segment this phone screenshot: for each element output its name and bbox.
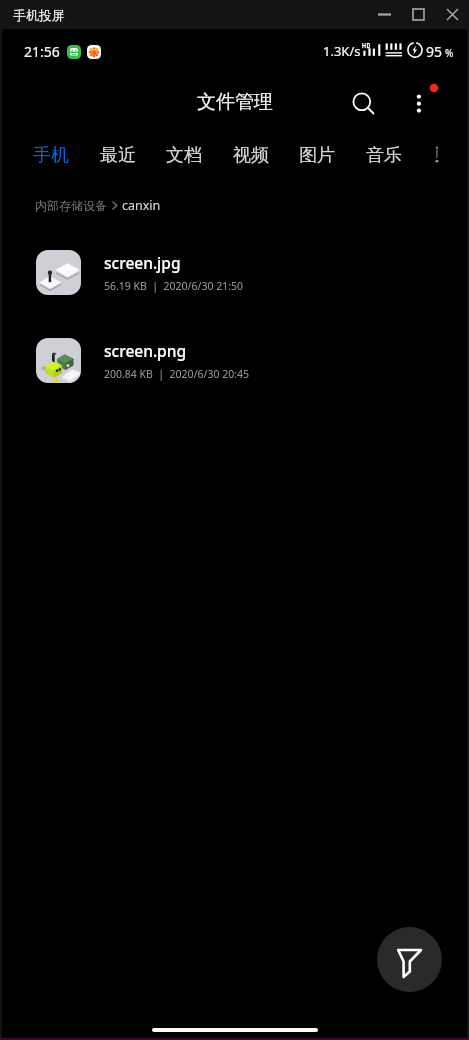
staticText: 文件管理 (197, 90, 273, 114)
staticText: 1.3K/s (323, 42, 361, 60)
button[interactable]: screen.jpg (2, 233, 467, 312)
button[interactable]: screen.png (2, 321, 467, 400)
button[interactable] (426, 134, 462, 176)
button[interactable]: Maximize (400, 0, 436, 29)
staticText: 95 (426, 42, 443, 61)
staticText: 最近 (100, 144, 136, 167)
staticText: 200.84 KB | 2020/6/30 20:45 (104, 367, 250, 381)
staticText: 图片 (299, 144, 335, 167)
button[interactable]: Close (434, 0, 469, 29)
staticText: screen.jpg (104, 252, 181, 273)
staticText: 21:56 (24, 42, 60, 61)
button[interactable]: 内部存储设备 (35, 198, 107, 213)
staticText: % (445, 46, 454, 60)
button[interactable]: More options (397, 79, 441, 123)
button[interactable]: 手机 (18, 134, 84, 176)
staticText: 手机投屏 (13, 7, 65, 23)
button[interactable]: Search (340, 81, 386, 127)
staticText: 56.19 KB | 2020/6/30 21:50 (104, 279, 244, 293)
button[interactable]: Filter (377, 927, 442, 992)
staticText: 手机 (33, 144, 69, 167)
button[interactable]: 图片 (284, 134, 350, 176)
staticText: screen.png (104, 340, 187, 361)
button[interactable]: canxin (122, 197, 161, 214)
button[interactable]: 文档 (151, 134, 217, 176)
staticText: 文档 (166, 144, 202, 167)
button[interactable]: 最近 (85, 134, 151, 176)
button[interactable]: 音乐 (351, 134, 417, 176)
staticText: 音乐 (366, 144, 402, 167)
button[interactable]: 视频 (218, 134, 284, 176)
button[interactable]: Minimize (366, 0, 402, 29)
staticText: 视频 (233, 144, 269, 167)
